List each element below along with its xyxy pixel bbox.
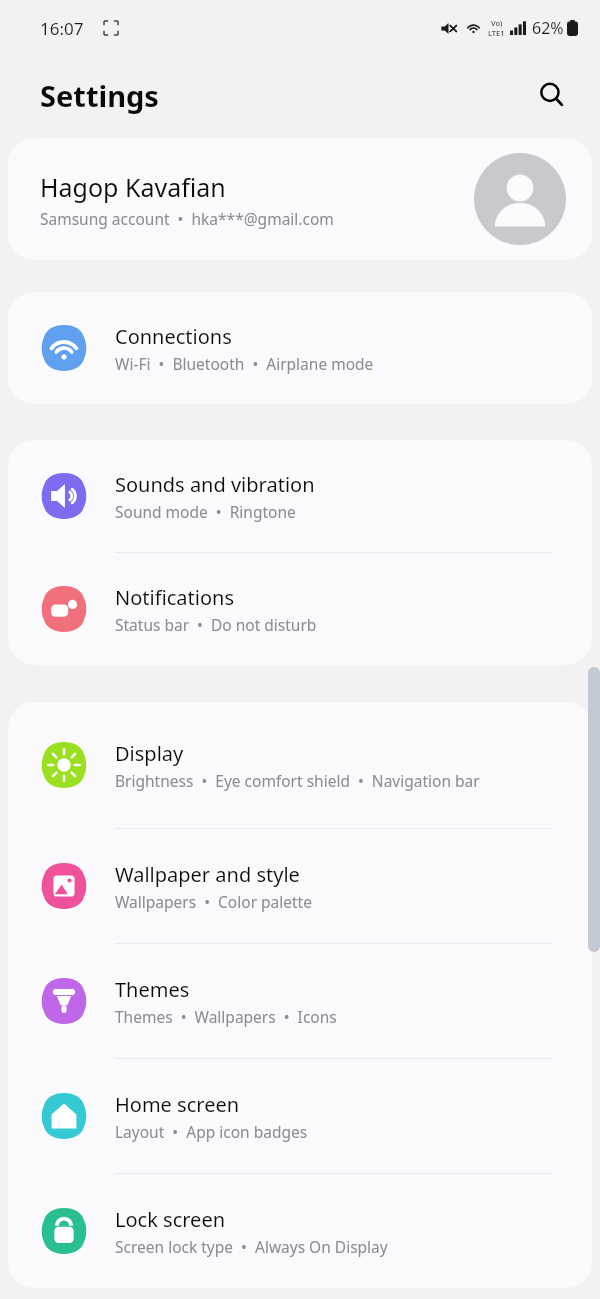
button[interactable]: Notifications — [8, 553, 592, 665]
staticText: Notifications — [115, 584, 234, 611]
staticText: LTE1 — [488, 28, 505, 38]
staticText: Hagop Kavafian — [40, 170, 226, 204]
staticText: 16:07 — [40, 17, 84, 40]
staticText: Sounds and vibration — [115, 471, 315, 498]
staticText: Samsung account • hka***@gmail.com — [40, 208, 334, 229]
button[interactable]: Display — [8, 702, 592, 828]
staticText: 62% — [532, 17, 564, 39]
button[interactable]: Sounds and vibration — [8, 440, 592, 552]
staticText: Brightness • Eye comfort shield • Naviga… — [115, 770, 480, 791]
staticText: Wallpapers • Color palette — [115, 891, 312, 912]
button[interactable]: Home screen — [8, 1059, 592, 1173]
staticText: Layout • App icon badges — [115, 1121, 308, 1142]
staticText: Home screen — [115, 1091, 240, 1118]
staticText: Status bar • Do not disturb — [115, 614, 317, 635]
staticText: Wi-Fi • Bluetooth • Airplane mode — [115, 353, 374, 374]
staticText: Connections — [115, 323, 232, 350]
button[interactable]: Hagop Kavafian — [8, 138, 592, 260]
staticText: Themes — [115, 976, 190, 1003]
button[interactable]: Wallpaper and style — [8, 829, 592, 943]
staticText: Themes • Wallpapers • Icons — [115, 1006, 337, 1027]
staticText: Vo) — [491, 18, 503, 28]
staticText: Screen lock type • Always On Display — [115, 1236, 388, 1257]
button[interactable]: Lock screen — [8, 1174, 592, 1288]
staticText: Settings — [40, 76, 159, 115]
staticText: Wallpaper and style — [115, 861, 300, 888]
button[interactable]: Search — [530, 73, 574, 117]
staticText: Lock screen — [115, 1206, 226, 1233]
staticText: Display — [115, 740, 184, 767]
button[interactable]: Connections — [8, 292, 592, 404]
button[interactable]: Themes — [8, 944, 592, 1058]
staticText: Sound mode • Ringtone — [115, 501, 296, 522]
